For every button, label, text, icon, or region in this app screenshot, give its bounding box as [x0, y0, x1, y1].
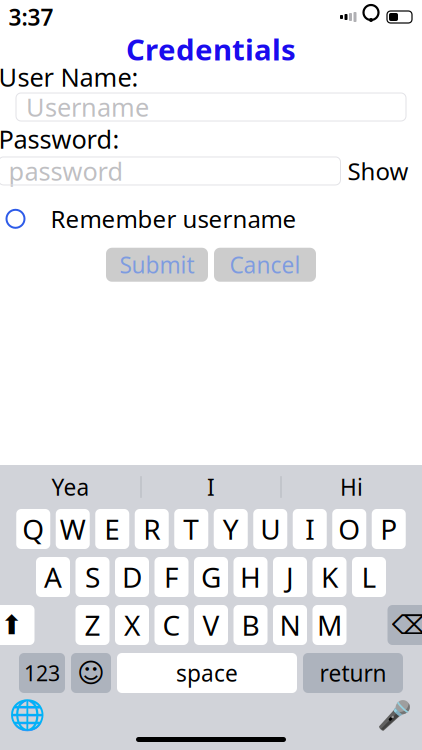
button[interactable]: J	[273, 557, 307, 597]
button[interactable]: A	[36, 557, 70, 597]
staticText: Q	[22, 510, 44, 548]
staticText: T	[183, 510, 199, 548]
button[interactable]: E	[95, 509, 129, 549]
staticText: O	[338, 510, 360, 548]
staticText: ⬆	[0, 610, 22, 640]
staticText: ⌫	[391, 610, 422, 640]
button[interactable]: Shift	[0, 605, 34, 645]
button[interactable]: Yea	[0, 467, 140, 507]
button[interactable]: Dictation	[377, 698, 411, 732]
staticText: L	[361, 558, 376, 596]
staticText: E	[104, 510, 120, 548]
staticText: D	[122, 558, 142, 596]
staticText: J	[286, 558, 294, 596]
staticText: space	[176, 658, 238, 688]
button[interactable]: B	[233, 605, 267, 645]
staticText: X	[124, 606, 140, 644]
staticText: 🎤	[377, 699, 412, 731]
button[interactable]: T	[174, 509, 208, 549]
staticText: I	[305, 510, 314, 548]
staticText: A	[44, 558, 62, 596]
staticText: S	[85, 558, 100, 596]
button[interactable]: D	[115, 557, 149, 597]
staticText: V	[202, 606, 219, 644]
staticText: N	[279, 606, 300, 644]
button[interactable]: space	[117, 653, 297, 693]
staticText: 🌐	[9, 698, 46, 732]
button[interactable]: Hi	[281, 467, 421, 507]
button[interactable]: F	[154, 557, 188, 597]
button[interactable]: H	[233, 557, 267, 597]
staticText: Username	[26, 90, 149, 124]
staticText: Show	[347, 155, 408, 187]
button[interactable]: P	[372, 509, 406, 549]
button[interactable]: Next keyboard	[10, 698, 44, 732]
staticText: Credentials	[126, 29, 296, 68]
staticText: password	[8, 154, 123, 188]
button[interactable]: 123	[19, 653, 65, 693]
button[interactable]: I	[141, 467, 280, 507]
button[interactable]: return	[303, 653, 403, 693]
button[interactable]: I	[293, 509, 327, 549]
staticText: 3:37	[8, 2, 53, 32]
button[interactable]: R	[135, 509, 169, 549]
staticText: Yea	[51, 472, 89, 502]
button[interactable]: Z	[75, 605, 109, 645]
button[interactable]: Delete	[387, 605, 422, 645]
staticText: Remember username	[50, 203, 296, 235]
staticText: 123	[24, 659, 60, 687]
button[interactable]: N	[273, 605, 307, 645]
staticText: ☺	[77, 658, 105, 688]
staticText: W	[60, 510, 86, 548]
staticText: K	[321, 558, 338, 596]
button[interactable]: U	[253, 509, 287, 549]
button[interactable]: Cancel	[214, 248, 316, 282]
button[interactable]: Y	[214, 509, 248, 549]
button[interactable]: V	[194, 605, 228, 645]
staticText: R	[143, 510, 160, 548]
button[interactable]: Submit	[106, 248, 208, 282]
staticText: Cancel	[229, 250, 300, 280]
staticText: return	[319, 658, 386, 688]
staticText: G	[201, 558, 221, 596]
staticText: Submit	[119, 250, 194, 280]
button[interactable]: W	[56, 509, 90, 549]
button[interactable]: C	[154, 605, 188, 645]
staticText: I	[207, 472, 215, 502]
staticText: M	[317, 606, 342, 644]
staticText: Password:	[0, 122, 119, 156]
button[interactable]: S	[75, 557, 109, 597]
staticText: F	[164, 558, 179, 596]
staticText: H	[240, 558, 261, 596]
staticText: User Name:	[0, 60, 138, 94]
staticText: P	[380, 510, 397, 548]
staticText: U	[260, 510, 280, 548]
button[interactable]: Emoji	[71, 653, 111, 693]
button[interactable]: Show	[347, 155, 408, 187]
button[interactable]: G	[194, 557, 228, 597]
button[interactable]: X	[115, 605, 149, 645]
button[interactable]: O	[332, 509, 366, 549]
staticText: B	[241, 606, 259, 644]
staticText: Hi	[340, 472, 363, 502]
button[interactable]: K	[312, 557, 346, 597]
button[interactable]: Remember username	[6, 203, 296, 235]
button[interactable]: Q	[16, 509, 50, 549]
button[interactable]: M	[312, 605, 346, 645]
staticText: C	[162, 606, 180, 644]
button[interactable]: L	[352, 557, 386, 597]
staticText: Z	[84, 606, 100, 644]
staticText: Y	[223, 510, 239, 548]
